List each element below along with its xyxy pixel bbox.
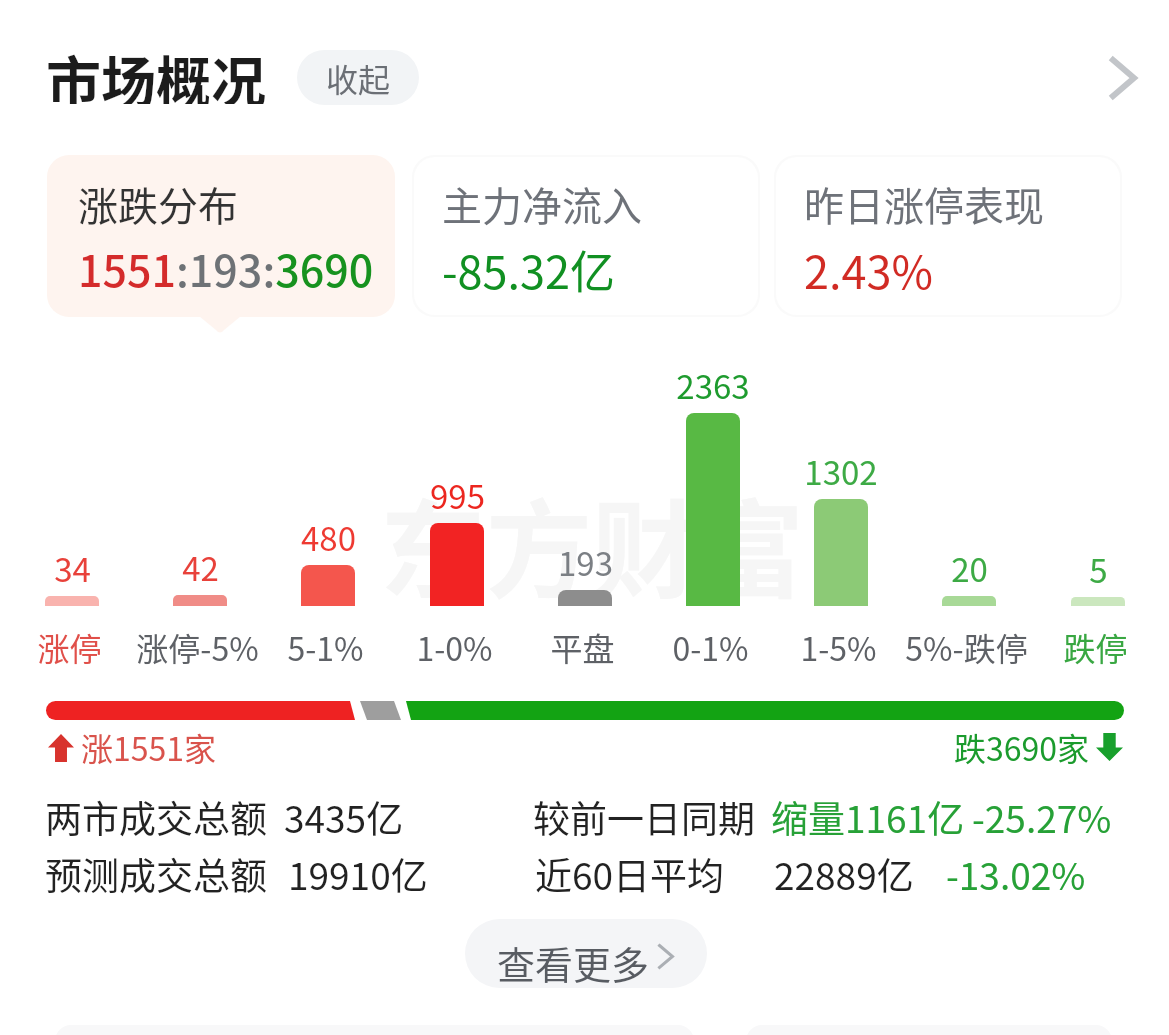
staticText: 20 xyxy=(951,544,988,592)
staticText: 涨停 xyxy=(37,624,102,670)
staticText: 995 xyxy=(430,471,485,519)
staticText: -25.27% xyxy=(972,790,1112,844)
button[interactable]: 主力净流入 xyxy=(414,157,758,315)
staticText: 市场概况 xyxy=(46,38,267,104)
staticText: -13.02% xyxy=(946,847,1086,901)
button[interactable]: 昨日涨停表现 xyxy=(776,157,1120,315)
staticText: 涨跌分布 xyxy=(78,175,238,233)
staticText: 22889亿 xyxy=(774,847,914,901)
staticText: 42 xyxy=(182,543,219,591)
staticText: 收起 xyxy=(326,55,391,101)
staticText: 0-1% xyxy=(672,624,749,670)
staticText: 1302 xyxy=(804,447,878,495)
staticText: 2363 xyxy=(676,361,750,409)
button[interactable]: 涨跌分布 xyxy=(47,155,395,317)
staticText: 近60日平均 xyxy=(535,847,725,901)
staticText: 1-0% xyxy=(416,624,493,670)
staticText: 东方财富 xyxy=(380,466,804,619)
staticText: 跌停 xyxy=(1063,624,1128,670)
staticText: 平盘 xyxy=(550,624,615,670)
staticText: 较前一日同期 xyxy=(533,790,755,844)
staticText: 3435亿 xyxy=(284,790,404,844)
staticText: 5 xyxy=(1089,545,1108,593)
staticText: 1551:193:3690 xyxy=(78,237,374,299)
staticText: 480 xyxy=(301,513,356,561)
staticText: 昨日涨停表现 xyxy=(804,175,1044,233)
staticText: 34 xyxy=(54,544,91,592)
staticText: 1-5% xyxy=(800,624,877,670)
button[interactable]: 收起 xyxy=(297,50,419,105)
staticText: 主力净流入 xyxy=(442,175,642,233)
staticText: 5-1% xyxy=(287,624,364,670)
staticText: 涨停-5% xyxy=(136,624,259,670)
staticText: 预测成交总额 xyxy=(45,847,267,901)
staticText: 5%-跌停 xyxy=(905,624,1028,670)
staticText: 涨1551家 xyxy=(81,724,217,770)
button[interactable]: Expand section xyxy=(1094,48,1154,108)
staticText: -85.32亿 xyxy=(442,237,616,302)
staticText: 查看更多 xyxy=(497,935,650,990)
staticText: 2.43% xyxy=(804,237,933,302)
staticText: 19910亿 xyxy=(288,847,428,901)
staticText: 跌3690家 xyxy=(954,724,1090,770)
staticText: 两市成交总额 xyxy=(45,790,267,844)
button[interactable] xyxy=(465,919,707,988)
staticText: 缩量1161亿 xyxy=(771,790,965,844)
staticText: 193 xyxy=(558,538,613,586)
